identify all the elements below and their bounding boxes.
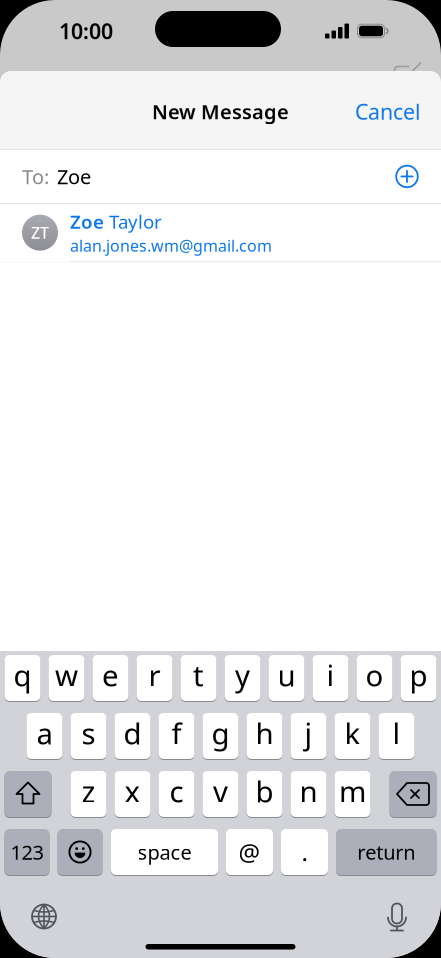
- button[interactable]: h: [246, 713, 282, 759]
- button[interactable]: Next keyboard: [14, 891, 74, 941]
- button[interactable]: d: [114, 713, 150, 759]
- button[interactable]: q: [4, 655, 40, 701]
- staticText: space: [137, 839, 191, 865]
- button[interactable]: b: [246, 771, 282, 817]
- button[interactable]: e: [92, 655, 128, 701]
- staticText: a: [36, 713, 52, 752]
- button[interactable]: ZT: [0, 204, 441, 262]
- button[interactable]: .: [281, 829, 328, 875]
- staticText: x: [124, 771, 140, 810]
- button[interactable]: Dictation: [367, 891, 427, 941]
- staticText: Cancel: [355, 97, 421, 126]
- staticText: b: [255, 771, 273, 810]
- staticText: r: [148, 655, 160, 694]
- staticText: o: [365, 655, 383, 694]
- button[interactable]: t: [180, 655, 216, 701]
- staticText: h: [255, 713, 273, 752]
- button[interactable]: Cancel: [355, 97, 441, 126]
- button[interactable]: Delete: [389, 771, 436, 817]
- button[interactable]: g: [202, 713, 238, 759]
- button[interactable]: return: [336, 829, 436, 875]
- staticText: @: [238, 836, 260, 868]
- button[interactable]: Add contact: [385, 154, 429, 198]
- staticText: 123: [10, 839, 43, 865]
- button[interactable]: r: [136, 655, 172, 701]
- staticText: d: [123, 713, 141, 752]
- button[interactable]: Emoji: [57, 829, 102, 875]
- staticText: k: [344, 713, 360, 752]
- button[interactable]: 123: [4, 829, 49, 875]
- staticText: .: [301, 836, 307, 868]
- staticText: 10:00: [59, 17, 113, 45]
- button[interactable]: o: [356, 655, 392, 701]
- staticText: z: [81, 771, 95, 810]
- staticText: return: [357, 839, 415, 865]
- button[interactable]: u: [268, 655, 304, 701]
- staticText: s: [81, 713, 95, 752]
- staticText: ZT: [31, 222, 49, 243]
- staticText: Zoe: [57, 163, 91, 190]
- button[interactable]: w: [48, 655, 84, 701]
- staticText: Zoe Taylor: [70, 209, 162, 234]
- button[interactable]: z: [70, 771, 106, 817]
- button[interactable]: y: [224, 655, 260, 701]
- staticText: g: [211, 713, 229, 752]
- staticText: p: [409, 655, 427, 694]
- button[interactable]: To:: [0, 150, 441, 203]
- staticText: m: [339, 771, 366, 810]
- button[interactable]: l: [378, 713, 414, 759]
- button[interactable]: i: [312, 655, 348, 701]
- button[interactable]: @: [226, 829, 273, 875]
- button[interactable]: n: [290, 771, 326, 817]
- button[interactable]: v: [202, 771, 238, 817]
- button[interactable]: space: [111, 829, 218, 875]
- button[interactable]: s: [70, 713, 106, 759]
- button[interactable]: c: [158, 771, 194, 817]
- staticText: u: [277, 655, 295, 694]
- staticText: f: [171, 713, 181, 752]
- button[interactable]: f: [158, 713, 194, 759]
- staticText: w: [55, 655, 78, 694]
- button[interactable]: m: [334, 771, 370, 817]
- staticText: c: [169, 771, 183, 810]
- staticText: New Message: [152, 98, 289, 125]
- staticText: y: [235, 655, 250, 694]
- staticText: i: [326, 655, 334, 694]
- staticText: To:: [22, 163, 49, 190]
- staticText: v: [213, 771, 228, 810]
- staticText: n: [299, 771, 317, 810]
- button[interactable]: a: [26, 713, 62, 759]
- button[interactable]: Shift: [4, 771, 51, 817]
- staticText: j: [304, 713, 312, 752]
- staticText: q: [13, 655, 31, 694]
- button[interactable]: k: [334, 713, 370, 759]
- staticText: alan.jones.wm@gmail.com: [70, 235, 272, 256]
- staticText: t: [193, 655, 204, 694]
- button[interactable]: x: [114, 771, 150, 817]
- button[interactable]: j: [290, 713, 326, 759]
- staticText: e: [102, 655, 119, 694]
- button[interactable]: p: [400, 655, 436, 701]
- staticText: l: [392, 713, 400, 752]
